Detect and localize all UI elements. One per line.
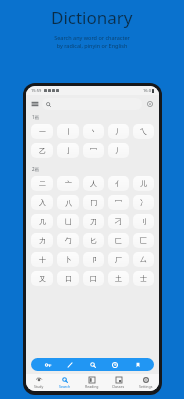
button[interactable]: 刂 [133, 214, 154, 229]
staticText: 儿 [140, 179, 147, 188]
button[interactable]: Settings [132, 374, 159, 391]
staticText: 卜 [65, 255, 72, 264]
staticText: 冫 [140, 198, 147, 207]
button[interactable]: 匚 [108, 233, 129, 248]
staticText: 口 [65, 274, 72, 283]
staticText: 凵 [65, 217, 72, 226]
staticText: Search [59, 384, 71, 389]
button[interactable]: 八 [57, 195, 79, 210]
button[interactable]: 囗 [83, 271, 104, 286]
staticText: 匚 [115, 236, 122, 245]
button[interactable]: 力 [31, 233, 53, 248]
button[interactable]: 厂 [108, 252, 129, 267]
button[interactable]: 丿 [108, 143, 129, 158]
staticText: 亅 [65, 146, 72, 155]
staticText: 入 [39, 198, 46, 207]
button[interactable]: 刀 [83, 214, 104, 229]
staticText: Settings [139, 384, 153, 389]
staticText: Reading [85, 384, 99, 389]
button[interactable]: 凵 [57, 214, 79, 229]
button[interactable]: 卜 [57, 252, 79, 267]
button[interactable]: 口 [57, 271, 79, 286]
button[interactable]: Classes [105, 374, 132, 391]
button[interactable]: 丨 [57, 124, 79, 139]
staticText: 刂 [140, 217, 147, 226]
staticText: 力 [39, 236, 46, 245]
button[interactable]: History [109, 359, 121, 371]
staticText: 士 [140, 274, 147, 283]
staticText: 乙 [39, 146, 46, 155]
button[interactable]: 卩 [83, 252, 104, 267]
button[interactable]: Search [87, 359, 99, 371]
button[interactable]: Help [145, 99, 155, 109]
staticText: 匸 [140, 236, 147, 245]
staticText: 一 [39, 127, 46, 136]
staticText: 厂 [115, 255, 122, 264]
button[interactable]: 冖 [108, 195, 129, 210]
button[interactable]: 乀 [133, 124, 154, 139]
staticText: Search any word or character by radical,… [54, 34, 130, 50]
button[interactable]: 入 [31, 195, 53, 210]
button[interactable]: Search [52, 374, 78, 391]
button[interactable]: 儿 [133, 176, 154, 191]
button[interactable]: Reading [78, 374, 105, 391]
staticText: 冂 [90, 198, 97, 207]
button[interactable]: 乙 [31, 143, 53, 158]
staticText: 丶 [90, 127, 97, 136]
button[interactable]: Study [26, 374, 52, 391]
button[interactable]: 一 [31, 124, 53, 139]
staticText: 卩 [90, 255, 97, 264]
button[interactable] [42, 98, 142, 110]
button[interactable]: 二 [31, 176, 53, 191]
staticText: 丿 [115, 146, 122, 155]
staticText: 几 [39, 217, 46, 226]
staticText: 人 [90, 179, 97, 188]
staticText: 亻 [115, 179, 122, 188]
staticText: 又 [39, 274, 46, 283]
button[interactable]: Draw [64, 359, 76, 371]
staticText: Dictionary [51, 6, 133, 29]
button[interactable]: 亻 [108, 176, 129, 191]
button[interactable]: 土 [108, 271, 129, 286]
staticText: 冖 [115, 198, 122, 207]
button[interactable]: 厶 [133, 252, 154, 267]
button[interactable]: 又 [31, 271, 53, 286]
staticText: 2画 [32, 166, 40, 172]
button[interactable]: Radicals [42, 359, 54, 371]
staticText: 丿 [115, 127, 122, 136]
staticText: Study [34, 384, 44, 389]
staticText: 八 [65, 198, 72, 207]
button[interactable]: 人 [83, 176, 104, 191]
staticText: 囗 [90, 274, 97, 283]
staticText: 冖 [90, 146, 97, 155]
staticText: 厶 [140, 255, 147, 264]
button[interactable]: 十 [31, 252, 53, 267]
staticText: 刀 [90, 217, 97, 226]
staticText: 匕 [90, 236, 97, 245]
staticText: 16:0 [143, 88, 151, 93]
staticText: 1画 [32, 114, 40, 120]
staticText: 勹 [65, 236, 72, 245]
staticText: 十 [39, 255, 46, 264]
button[interactable]: 士 [133, 271, 154, 286]
button[interactable]: 匕 [83, 233, 104, 248]
button[interactable]: 几 [31, 214, 53, 229]
staticText: 乀 [140, 127, 147, 136]
button[interactable]: 匸 [133, 233, 154, 248]
button[interactable]: 刁 [108, 214, 129, 229]
button[interactable]: 冂 [83, 195, 104, 210]
button[interactable]: 冫 [133, 195, 154, 210]
staticText: 二 [39, 179, 46, 188]
button[interactable]: 勹 [57, 233, 79, 248]
staticText: 丨 [65, 127, 72, 136]
button[interactable]: 丶 [83, 124, 104, 139]
staticText: 刁 [115, 217, 122, 226]
staticText: Classes [112, 384, 125, 389]
button[interactable]: 冖 [83, 143, 104, 158]
button[interactable]: Menu [30, 99, 40, 109]
button[interactable]: Bookmarks [132, 359, 144, 371]
button[interactable]: 亅 [57, 143, 79, 158]
button[interactable]: 丿 [108, 124, 129, 139]
button[interactable]: 亠 [57, 176, 79, 191]
staticText: 土 [115, 274, 122, 283]
